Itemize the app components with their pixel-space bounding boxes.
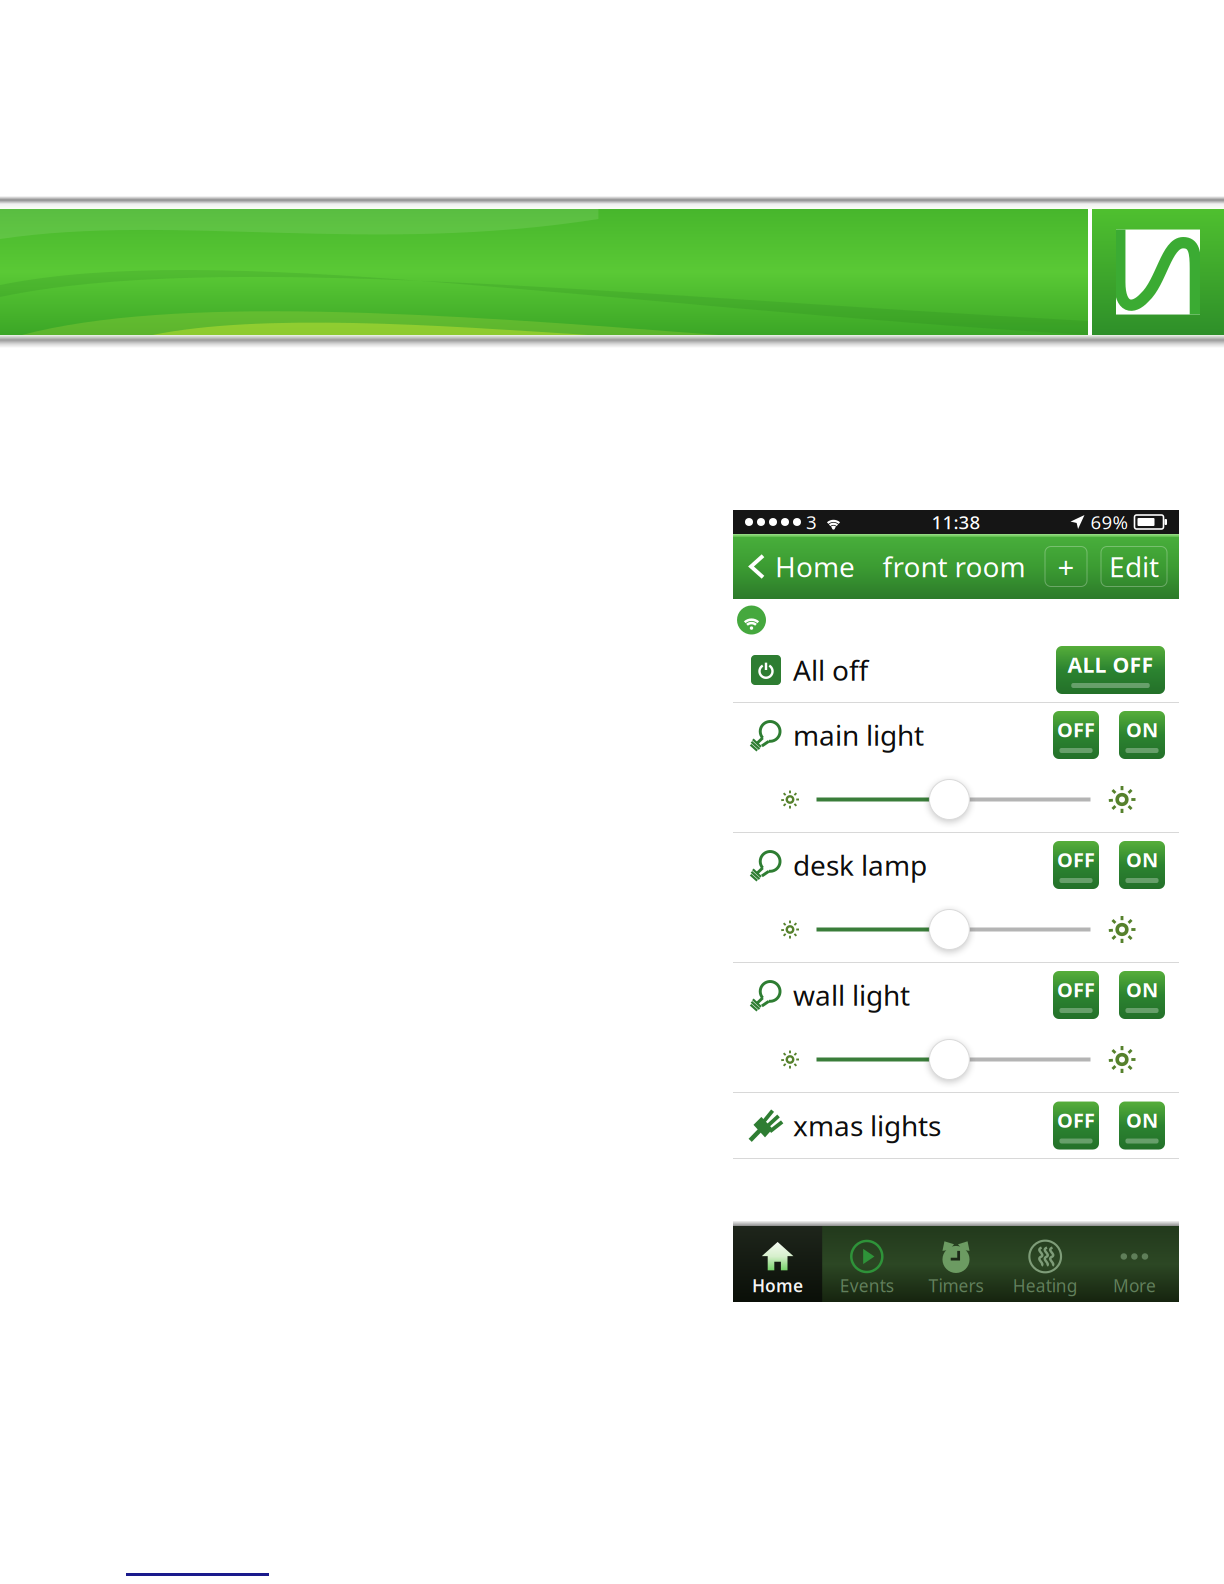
- staticText: OFF: [1057, 976, 1095, 1003]
- button[interactable]: ON: [1119, 841, 1165, 889]
- staticText: +: [1057, 547, 1074, 586]
- button[interactable]: OFF: [1053, 711, 1099, 759]
- button[interactable]: OFF: [1053, 1101, 1099, 1149]
- button[interactable]: Heating: [1001, 1226, 1090, 1302]
- staticText: Timers: [928, 1274, 983, 1297]
- staticText: Events: [840, 1274, 894, 1297]
- staticText: ON: [1126, 846, 1158, 873]
- staticText: desk lamp: [793, 846, 927, 884]
- button[interactable]: OFF: [1053, 841, 1099, 889]
- button[interactable]: ON: [1119, 971, 1165, 1019]
- staticText: More: [1113, 1274, 1156, 1297]
- staticText: OFF: [1057, 1107, 1095, 1133]
- staticText: front room: [882, 548, 1025, 585]
- button[interactable]: Timers: [911, 1226, 1001, 1302]
- staticText: OFF: [1057, 716, 1095, 743]
- button[interactable]: Home: [733, 1226, 822, 1302]
- staticText: ON: [1126, 976, 1158, 1003]
- staticText: Home: [752, 1274, 803, 1297]
- button[interactable]: Add: [1045, 546, 1087, 586]
- staticText: Heating: [1013, 1274, 1078, 1297]
- button[interactable]: ON: [1119, 711, 1165, 759]
- button[interactable]: ALL OFF: [1056, 646, 1165, 694]
- staticText: ON: [1126, 1107, 1158, 1133]
- staticText: All off: [793, 651, 868, 689]
- staticText: Home: [775, 548, 855, 585]
- button[interactable]: OFF: [1053, 971, 1099, 1019]
- button[interactable]: More: [1090, 1226, 1179, 1302]
- button[interactable]: Home: [745, 540, 855, 593]
- staticText: xmas lights: [793, 1107, 941, 1144]
- staticText: main light: [793, 716, 924, 754]
- staticText: Edit: [1109, 548, 1159, 585]
- staticText: wall light: [793, 976, 910, 1014]
- staticText: ON: [1126, 716, 1158, 743]
- staticText: OFF: [1057, 846, 1095, 873]
- staticText: ALL OFF: [1067, 650, 1153, 679]
- button[interactable]: ON: [1119, 1101, 1165, 1149]
- button[interactable]: Edit: [1101, 546, 1167, 586]
- staticText: 11:38: [931, 510, 980, 534]
- button[interactable]: Events: [822, 1226, 911, 1302]
- staticText: 69%: [1090, 510, 1128, 534]
- staticText: 3: [806, 510, 817, 534]
